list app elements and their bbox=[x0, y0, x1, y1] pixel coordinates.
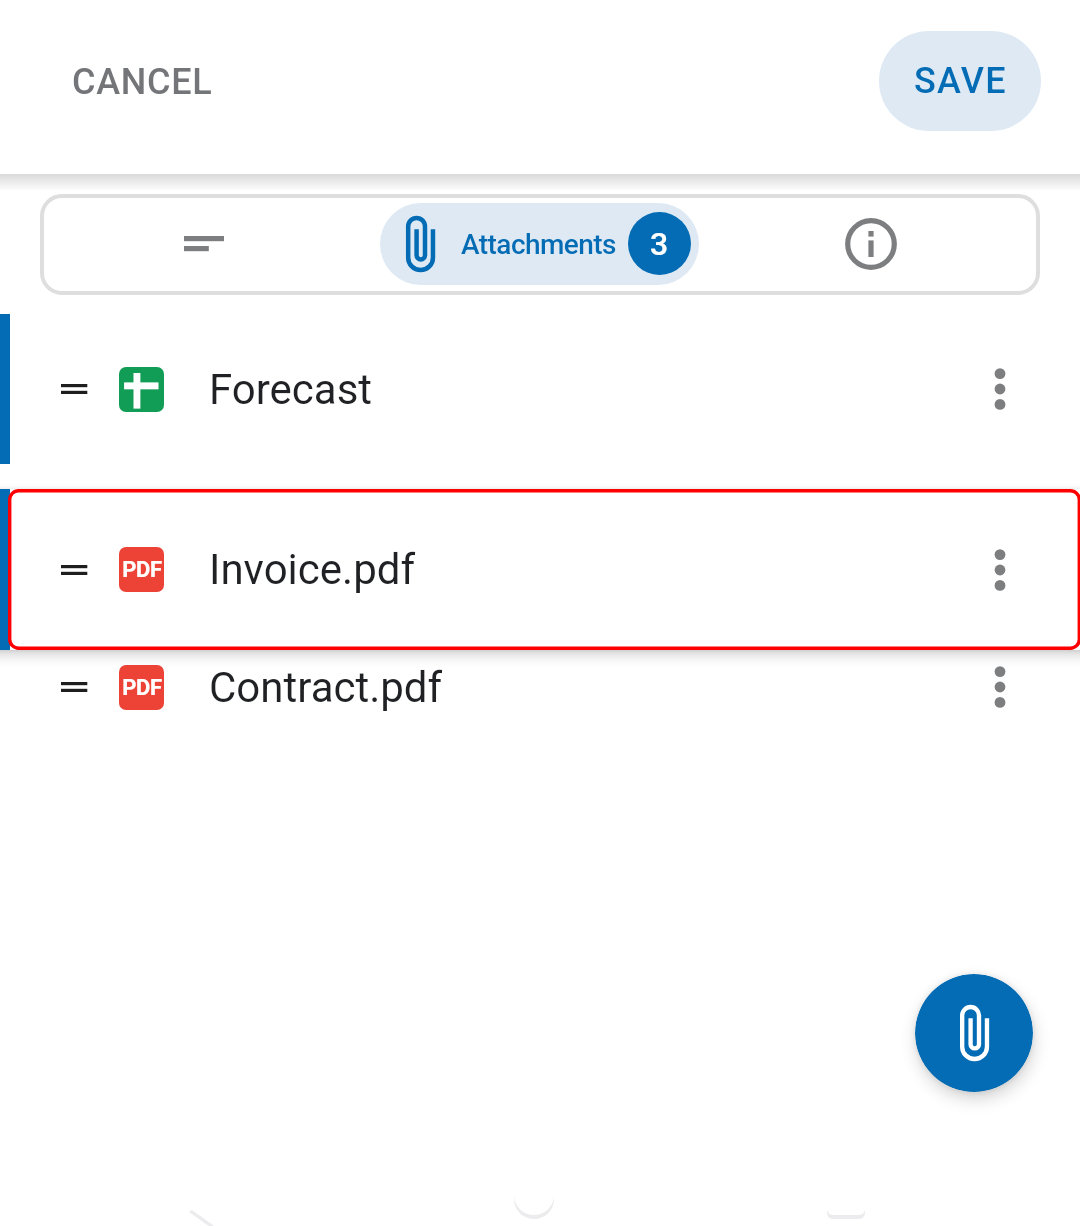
button[interactable]: More options for Contract.pdf bbox=[952, 639, 1048, 735]
button[interactable]: Info bbox=[702, 198, 1036, 291]
button[interactable]: Details bbox=[44, 198, 380, 291]
staticText: Contract.pdf bbox=[209, 663, 443, 712]
button[interactable]: PDF bbox=[0, 489, 1080, 650]
button[interactable]: More options for Forecast bbox=[952, 341, 1048, 437]
staticText: Attachments bbox=[461, 228, 616, 261]
staticText: PDF bbox=[122, 675, 162, 701]
button[interactable]: Add attachment bbox=[915, 974, 1033, 1092]
button[interactable]: CANCEL bbox=[44, 33, 240, 131]
button[interactable]: Attachments bbox=[380, 203, 699, 285]
staticText: CANCEL bbox=[72, 61, 213, 103]
button[interactable]: SAVE bbox=[879, 31, 1041, 131]
button[interactable]: Forecast bbox=[0, 314, 1080, 464]
staticText: Invoice.pdf bbox=[209, 545, 416, 594]
staticText: 3 bbox=[650, 225, 669, 263]
button[interactable]: PDF bbox=[0, 612, 1080, 762]
button[interactable]: More options for Invoice.pdf bbox=[952, 522, 1048, 618]
staticText: SAVE bbox=[914, 60, 1007, 102]
staticText: PDF bbox=[122, 557, 162, 583]
staticText: Forecast bbox=[209, 365, 373, 414]
